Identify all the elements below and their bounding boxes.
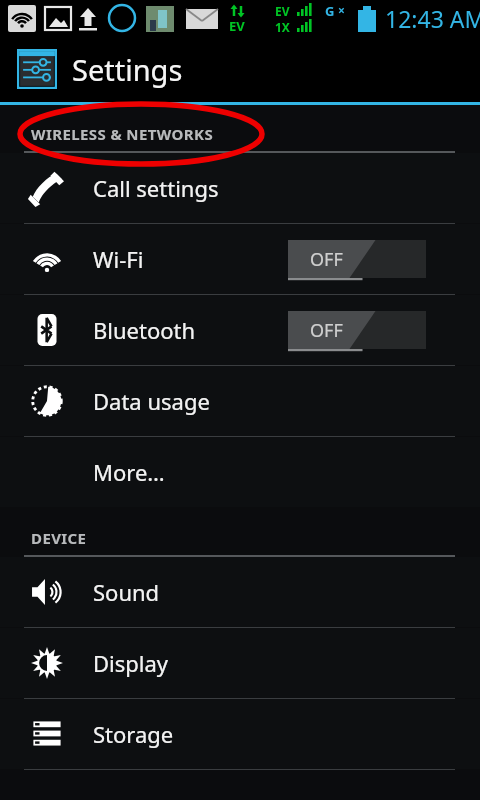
button[interactable]: Toggle off xyxy=(288,311,426,349)
button[interactable]: Bluetooth xyxy=(0,295,480,365)
staticText: OFF xyxy=(310,247,343,272)
staticText: Data usage xyxy=(93,386,210,416)
staticText: Bluetooth xyxy=(93,315,196,345)
button[interactable]: Storage xyxy=(0,699,480,769)
staticText: DEVICE xyxy=(31,528,87,548)
staticText: Storage xyxy=(93,719,174,749)
staticText: EV xyxy=(229,17,245,35)
staticText: Wi-Fi xyxy=(93,244,144,274)
button[interactable]: More… xyxy=(0,437,480,507)
staticText: Call settings xyxy=(93,173,219,203)
staticText: WIRELESS & NETWORKS xyxy=(31,124,214,144)
staticText: Settings xyxy=(72,50,183,89)
staticText: G xyxy=(325,2,335,20)
staticText: EV xyxy=(275,3,290,19)
button[interactable]: Call settings xyxy=(0,153,480,223)
staticText: × xyxy=(338,2,345,18)
staticText: 12:43 AM xyxy=(385,3,480,34)
button[interactable]: Toggle off xyxy=(288,240,426,278)
staticText: 1X xyxy=(275,19,290,35)
button[interactable]: Wi-Fi xyxy=(0,224,480,294)
staticText: Display xyxy=(93,648,169,678)
button[interactable]: Data usage xyxy=(0,366,480,436)
staticText: Sound xyxy=(93,577,160,607)
staticText: More… xyxy=(93,457,165,487)
button[interactable]: Display xyxy=(0,628,480,698)
button[interactable]: Sound xyxy=(0,557,480,627)
staticText: OFF xyxy=(310,318,343,343)
